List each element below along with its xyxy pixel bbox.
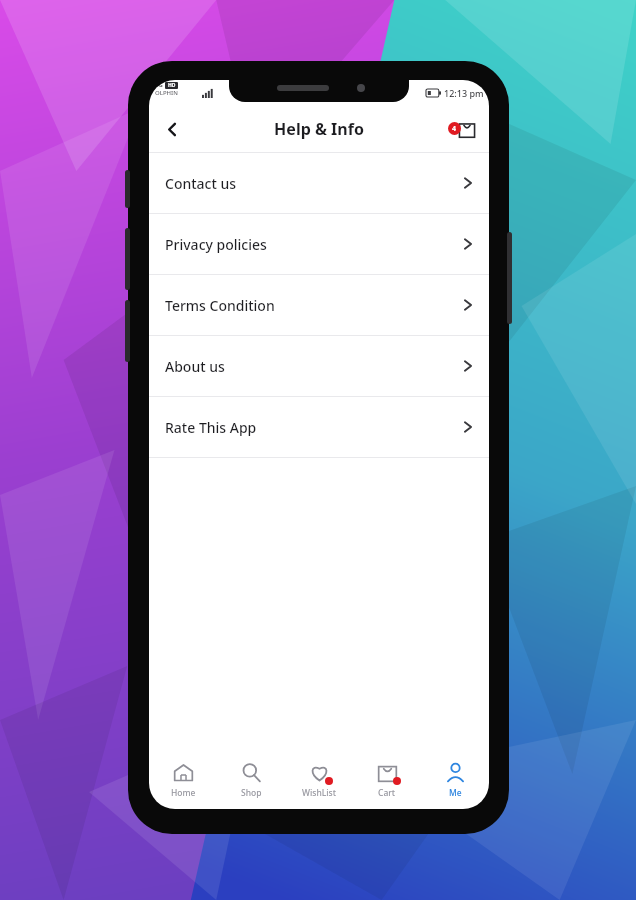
button[interactable]: Me bbox=[421, 751, 489, 809]
button[interactable]: Back bbox=[155, 112, 189, 146]
button[interactable]: WishList bbox=[285, 751, 353, 809]
staticText: Contact us bbox=[165, 174, 237, 193]
button[interactable]: Rate This App bbox=[149, 397, 489, 457]
button[interactable]: Home bbox=[149, 751, 217, 809]
button[interactable]: Cart bbox=[445, 111, 481, 147]
staticText: Home bbox=[171, 787, 196, 799]
staticText: About us bbox=[165, 357, 225, 376]
staticText: Privacy policies bbox=[165, 235, 267, 254]
button[interactable]: Contact us bbox=[149, 153, 489, 213]
staticText: 12:13 pm bbox=[444, 87, 484, 99]
staticText: WishList bbox=[302, 787, 336, 799]
staticText: Rate This App bbox=[165, 418, 257, 437]
staticText: Help & Info bbox=[274, 118, 364, 140]
button[interactable]: About us bbox=[149, 336, 489, 396]
staticText: OLPHIN bbox=[155, 89, 178, 97]
staticText: Cart bbox=[378, 787, 396, 799]
staticText: 4 bbox=[452, 124, 457, 134]
staticText: 4G bbox=[155, 81, 163, 89]
staticText: Me bbox=[449, 787, 462, 799]
staticText: HD bbox=[168, 82, 176, 89]
staticText: Shop bbox=[241, 787, 262, 799]
button[interactable]: Shop bbox=[217, 751, 285, 809]
button[interactable]: Privacy policies bbox=[149, 214, 489, 274]
button[interactable]: Terms Condition bbox=[149, 275, 489, 335]
staticText: Terms Condition bbox=[165, 296, 275, 315]
button[interactable]: Cart bbox=[353, 751, 421, 809]
